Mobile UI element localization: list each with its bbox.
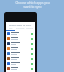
button[interactable]: OTHER bbox=[25, 27, 35, 30]
staticText: Select apps to sync bbox=[9, 23, 32, 26]
button[interactable] bbox=[6, 31, 35, 36]
button[interactable] bbox=[6, 56, 35, 61]
button[interactable] bbox=[6, 66, 35, 71]
staticText: Choose which apps you want to sync bbox=[15, 1, 50, 8]
button[interactable] bbox=[6, 36, 35, 41]
button[interactable]: SYNCED bbox=[15, 27, 25, 30]
button[interactable] bbox=[6, 61, 35, 66]
staticText: OTHER bbox=[26, 27, 34, 30]
button[interactable] bbox=[6, 41, 35, 46]
staticText: ALL bbox=[9, 27, 13, 30]
staticText: SYNCED bbox=[16, 27, 25, 30]
button[interactable]: ALL bbox=[6, 27, 15, 30]
button[interactable] bbox=[6, 51, 35, 56]
button[interactable] bbox=[6, 46, 35, 51]
